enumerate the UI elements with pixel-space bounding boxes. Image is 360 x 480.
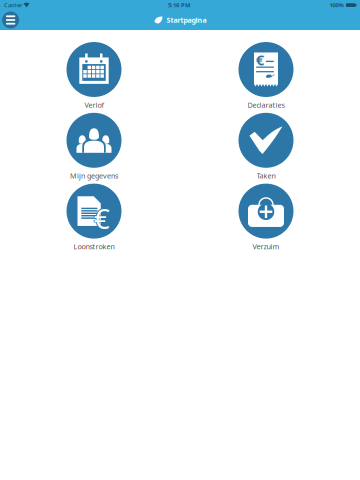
button[interactable]: € bbox=[180, 42, 352, 110]
staticText: 100% bbox=[329, 1, 343, 9]
button[interactable]: Verzuim bbox=[180, 184, 352, 251]
button[interactable]: Mijn gegevens bbox=[8, 113, 180, 181]
staticText: Taken bbox=[256, 171, 275, 181]
staticText: Carrier bbox=[4, 1, 22, 9]
staticText: € bbox=[93, 198, 111, 238]
staticText: Verlof bbox=[84, 100, 103, 110]
button[interactable]: Verlof bbox=[8, 42, 180, 110]
button[interactable]: € bbox=[8, 184, 180, 251]
staticText: € bbox=[256, 50, 264, 69]
staticText: Verzuim bbox=[252, 242, 279, 251]
staticText: Startpagina bbox=[166, 15, 206, 25]
staticText: € bbox=[94, 199, 110, 237]
staticText: 5:16 PM bbox=[168, 1, 191, 9]
button[interactable]: Menu bbox=[0, 10, 21, 30]
staticText: Declaraties bbox=[247, 100, 284, 110]
button[interactable]: Taken bbox=[180, 113, 352, 181]
staticText: Loonstroken bbox=[73, 242, 114, 251]
staticText: Mijn gegevens bbox=[70, 171, 118, 181]
